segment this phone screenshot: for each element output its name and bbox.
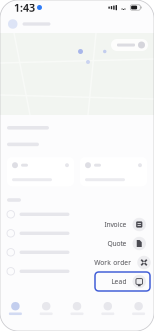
button[interactable]: More (123, 296, 154, 321)
button[interactable] (7, 205, 147, 224)
button[interactable]: Work order (95, 253, 150, 272)
staticText: Work order (94, 258, 131, 267)
button[interactable]: Clients (62, 296, 92, 321)
button[interactable] (7, 243, 147, 262)
staticText: Invoice (104, 220, 126, 229)
button[interactable]: Home (0, 296, 31, 321)
button[interactable] (7, 262, 147, 281)
button[interactable]: Date filter (111, 39, 148, 51)
button[interactable]: Schedule (31, 296, 62, 321)
staticText: Quote (107, 239, 126, 248)
button[interactable]: Invoice (95, 215, 150, 234)
staticText: 1:43 (14, 0, 35, 15)
button[interactable] (7, 157, 74, 186)
staticText: Lead (111, 277, 126, 286)
button[interactable]: Jobs (92, 296, 123, 321)
button[interactable]: Quote (95, 234, 150, 253)
button[interactable]: Lead (95, 272, 150, 291)
button[interactable] (7, 224, 147, 243)
button[interactable] (80, 157, 147, 186)
